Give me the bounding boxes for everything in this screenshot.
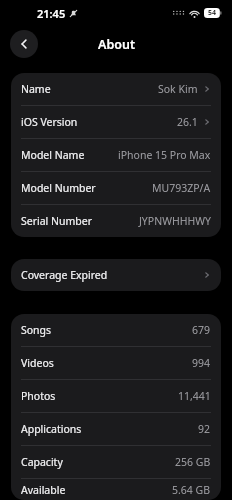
button[interactable]: Capacity — [11, 446, 221, 478]
staticText: 54 — [208, 8, 217, 18]
button[interactable]: iOS Version — [11, 106, 221, 138]
button[interactable]: Back — [10, 30, 38, 58]
staticText: Model Name — [21, 148, 85, 162]
button[interactable]: Applications — [11, 413, 221, 445]
button[interactable]: Name — [11, 73, 221, 105]
button[interactable]: Photos — [11, 380, 221, 412]
staticText: Coverage Expired — [21, 268, 108, 282]
staticText: Photos — [21, 389, 56, 403]
button[interactable]: Songs — [11, 314, 221, 346]
staticText: 256 GB — [175, 455, 211, 469]
staticText: About — [98, 36, 135, 53]
button[interactable]: Model Number — [11, 172, 221, 204]
button[interactable]: Available — [11, 479, 221, 500]
staticText: iPhone 15 Pro Max — [118, 148, 211, 162]
staticText: Model Number — [21, 181, 96, 195]
staticText: Serial Number — [21, 214, 93, 228]
button[interactable]: Videos — [11, 347, 221, 379]
staticText: 21:45 — [37, 6, 66, 21]
button[interactable]: Coverage Expired — [11, 259, 221, 291]
staticText: Sok Kim — [158, 82, 198, 96]
staticText: JYPNWHHHWY — [139, 214, 211, 228]
staticText: Capacity — [21, 455, 63, 469]
staticText: Videos — [21, 356, 54, 370]
staticText: Applications — [21, 422, 82, 436]
staticText: 5.64 GB — [172, 483, 211, 497]
button[interactable]: Model Name — [11, 139, 221, 171]
staticText: MU793ZP/A — [152, 181, 211, 195]
staticText: 994 — [192, 356, 211, 370]
staticText: 11,441 — [178, 389, 211, 403]
staticText: iOS Version — [21, 115, 78, 129]
staticText: 92 — [198, 422, 211, 436]
button[interactable]: Serial Number — [11, 205, 221, 237]
staticText: Songs — [21, 323, 52, 337]
staticText: Name — [21, 82, 51, 96]
staticText: 26.1 — [177, 115, 198, 129]
staticText: Available — [21, 483, 66, 497]
staticText: 679 — [192, 323, 211, 337]
